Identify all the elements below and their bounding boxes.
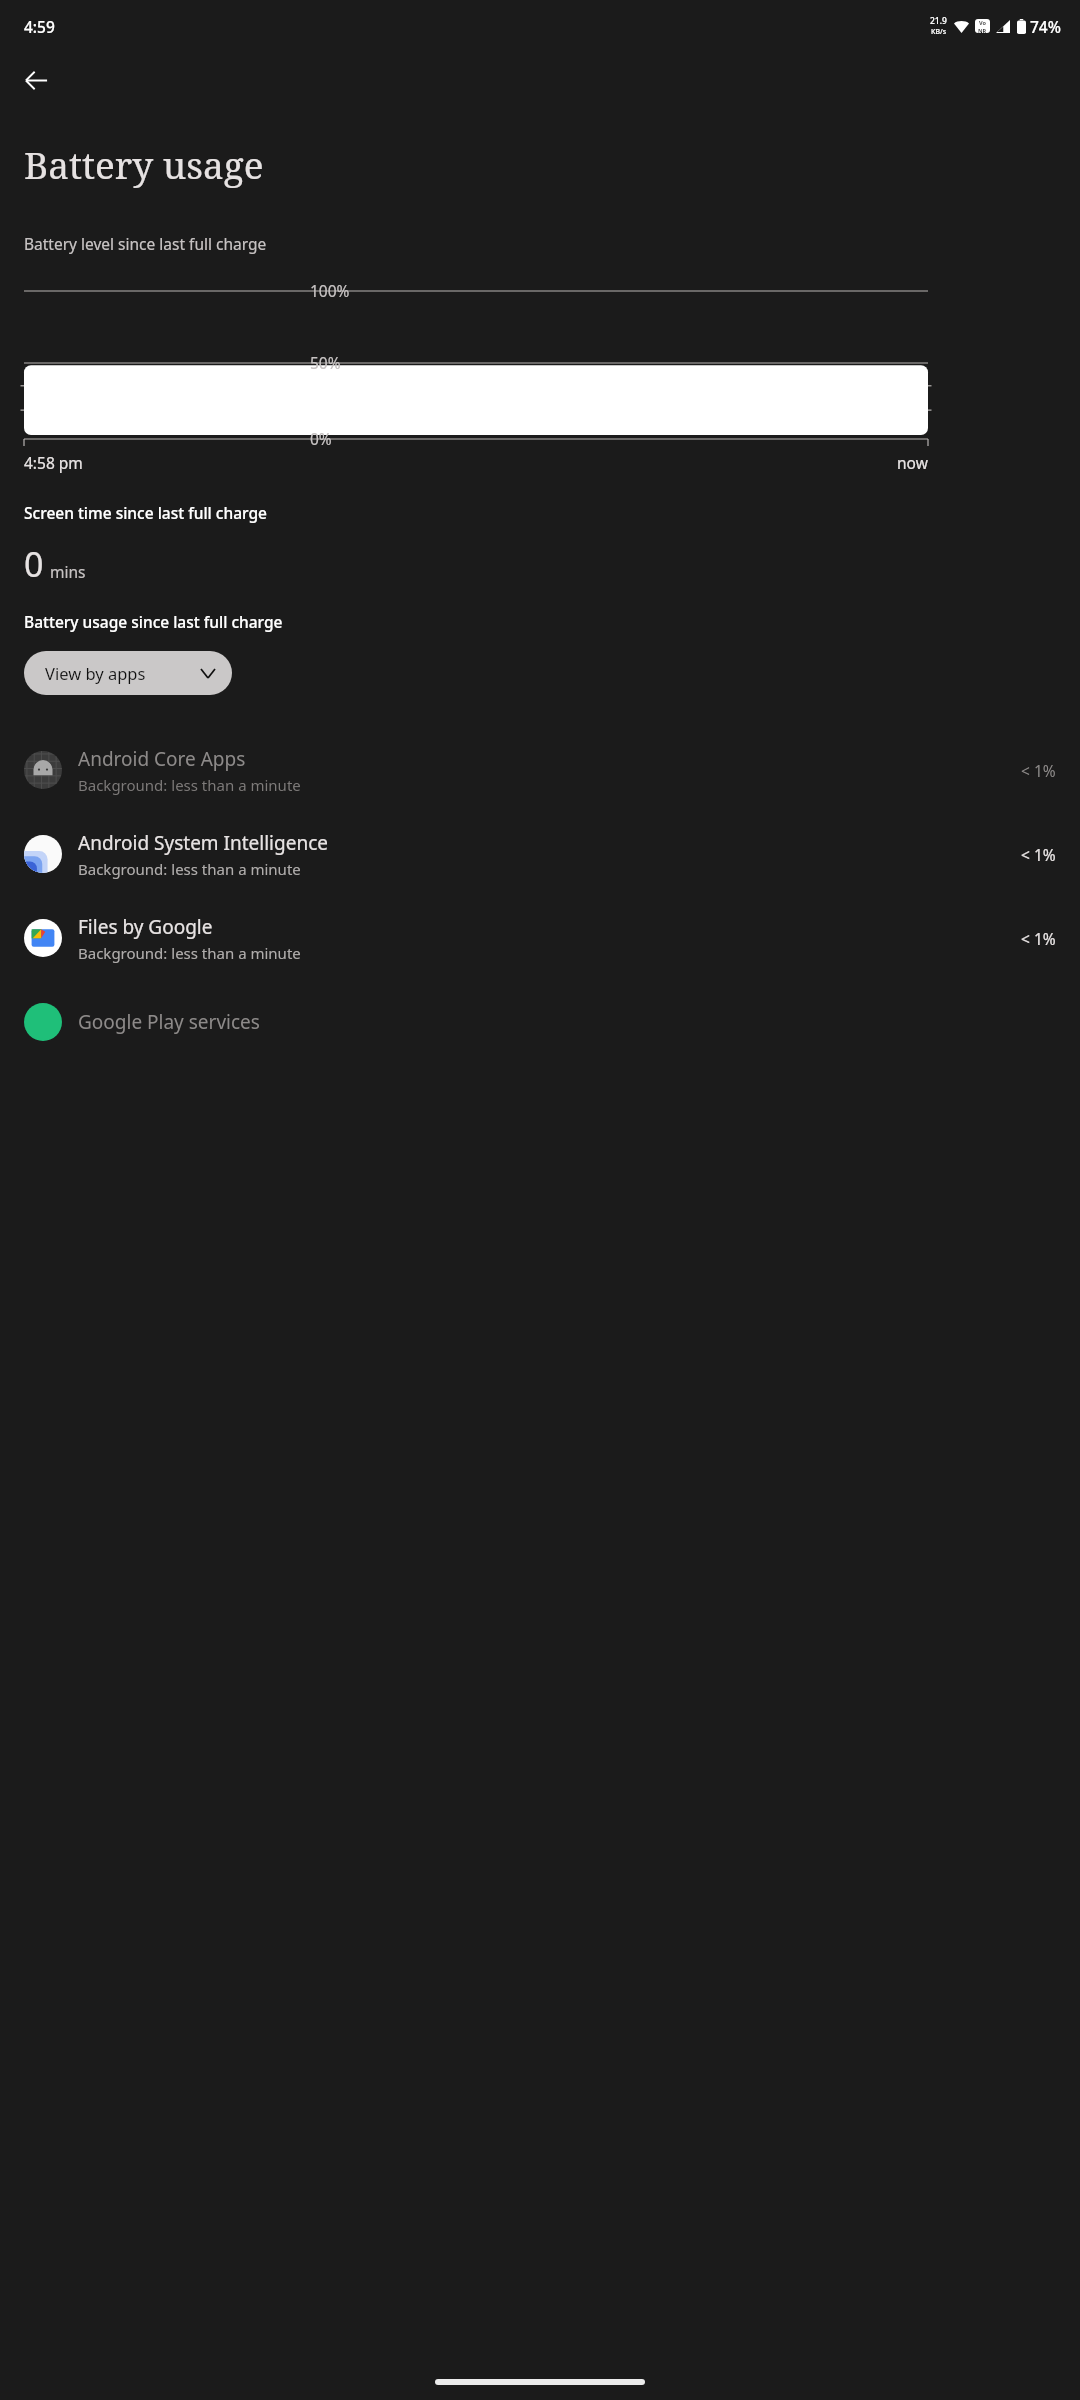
- staticText: Battery usage: [24, 139, 264, 189]
- staticText: mins: [50, 561, 86, 582]
- staticText: now: [897, 452, 928, 473]
- staticText: Screen time since last full charge: [24, 502, 267, 523]
- staticText: Vo: [979, 19, 987, 27]
- staticText: Background: less than a minute: [78, 943, 301, 963]
- button[interactable]: Android System Intelligence: [0, 812, 1080, 896]
- staticText: 0%: [310, 428, 332, 449]
- staticText: View by apps: [45, 662, 146, 684]
- staticText: 0: [24, 541, 44, 587]
- staticText: Background: less than a minute: [78, 775, 301, 795]
- staticText: 74%: [1030, 16, 1061, 37]
- button[interactable]: View by apps: [24, 651, 232, 695]
- staticText: 100%: [310, 280, 350, 301]
- staticText: 4:58 pm: [24, 452, 83, 473]
- staticText: NR: [978, 27, 987, 33]
- button[interactable]: Google Play services: [0, 980, 1080, 1064]
- staticText: Background: less than a minute: [78, 859, 301, 879]
- staticText: Files by Google: [78, 914, 213, 940]
- staticText: Google Play services: [78, 1009, 260, 1035]
- staticText: < 1%: [1021, 928, 1056, 949]
- staticText: < 1%: [1021, 760, 1056, 781]
- staticText: 21.9: [930, 15, 947, 27]
- button[interactable]: Back: [8, 52, 64, 108]
- staticText: KB/s: [931, 27, 947, 37]
- staticText: Battery level since last full charge: [24, 233, 267, 254]
- button[interactable]: Files by Google: [0, 896, 1080, 980]
- button[interactable]: Android Core Apps: [0, 728, 1080, 812]
- staticText: < 1%: [1021, 844, 1056, 865]
- staticText: Battery usage since last full charge: [24, 611, 283, 632]
- staticText: 4:59: [24, 16, 55, 37]
- staticText: Android Core Apps: [78, 746, 246, 772]
- staticText: 50%: [310, 352, 341, 373]
- staticText: Android System Intelligence: [78, 830, 329, 856]
